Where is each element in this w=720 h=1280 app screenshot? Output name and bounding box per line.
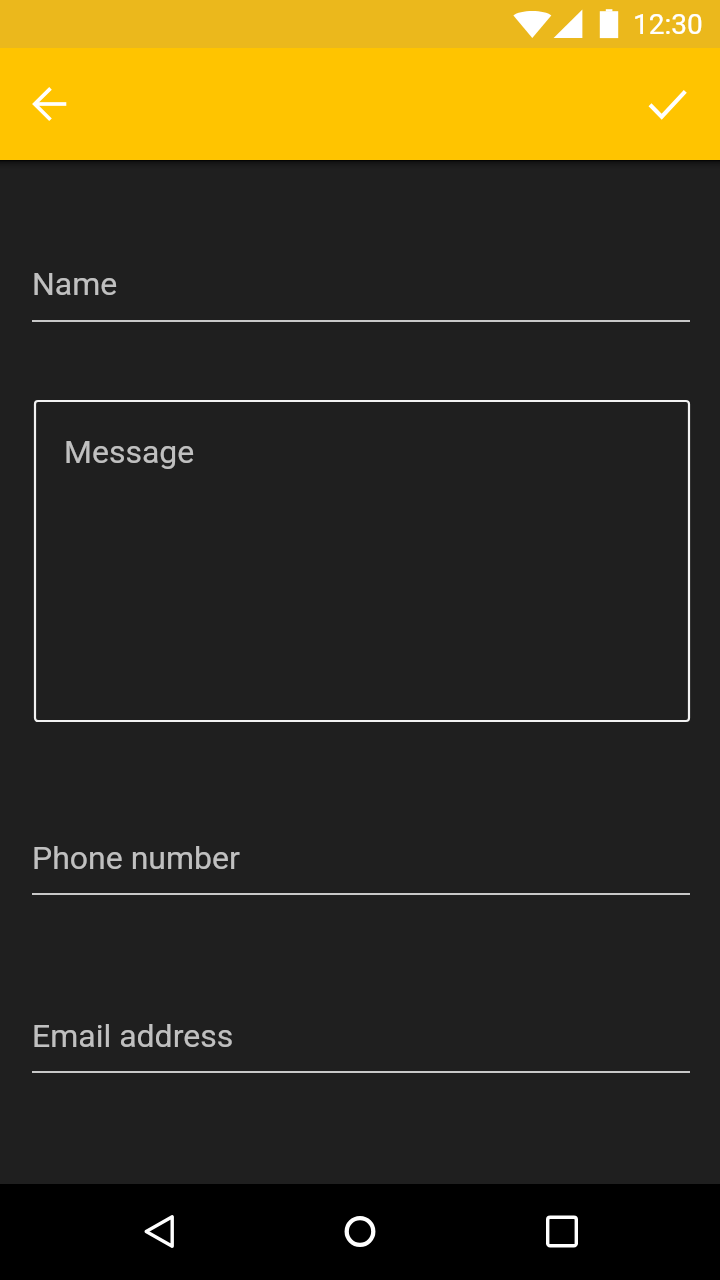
button[interactable]: Message (34, 400, 690, 722)
staticText: Name (32, 265, 118, 303)
button[interactable]: Name (32, 255, 690, 322)
button[interactable]: Recent apps (514, 1184, 610, 1280)
staticText: Email address (32, 1017, 234, 1055)
button[interactable]: Back (111, 1184, 207, 1280)
button[interactable]: Home (312, 1184, 408, 1280)
staticText: Phone number (32, 839, 240, 877)
button[interactable]: Done (639, 76, 695, 132)
button[interactable]: Email address (32, 1007, 690, 1073)
button[interactable]: Navigate up (6, 76, 62, 132)
staticText: Message (64, 433, 195, 471)
button[interactable]: Phone number (32, 829, 690, 895)
staticText: 12:30 (633, 8, 703, 41)
